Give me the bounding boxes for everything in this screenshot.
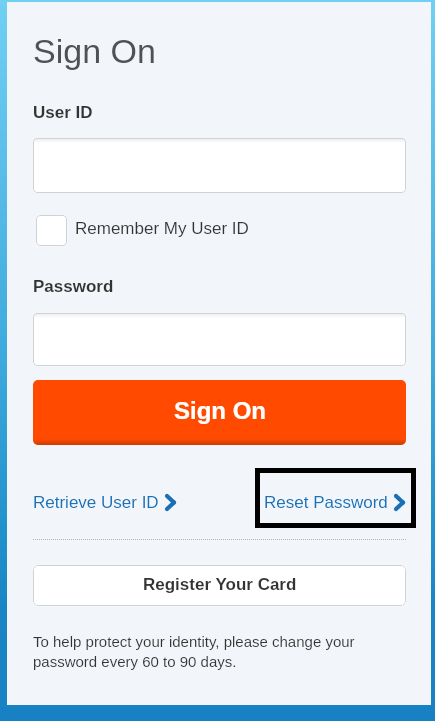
staticText: Reset Password: [264, 493, 388, 512]
button[interactable]: Reset Password: [255, 468, 416, 528]
staticText: Register Your Card: [143, 575, 297, 594]
staticText: Sign On: [174, 397, 266, 424]
staticText: To help protect your identity, please ch…: [33, 633, 355, 670]
staticText: Sign On: [33, 32, 156, 70]
other: Remember My User ID: [36, 215, 67, 246]
button[interactable]: Sign On: [33, 380, 406, 445]
button[interactable]: [33, 138, 406, 193]
staticText: Password: [33, 277, 114, 296]
button[interactable]: Register Your Card: [33, 565, 406, 606]
button[interactable]: [33, 313, 406, 366]
staticText: Remember My User ID: [75, 219, 249, 238]
staticText: Retrieve User ID: [33, 493, 159, 512]
button[interactable]: Remember My User ID: [33, 213, 249, 244]
staticText: User ID: [33, 103, 93, 122]
button[interactable]: Retrieve User ID: [33, 493, 176, 512]
